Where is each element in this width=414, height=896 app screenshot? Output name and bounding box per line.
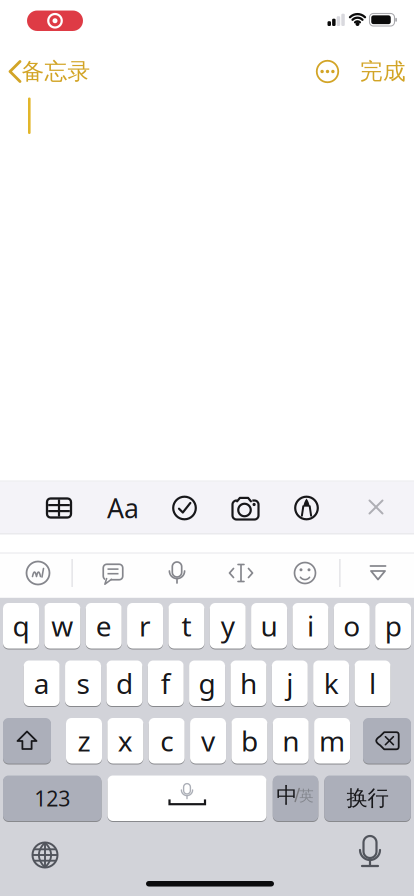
- staticText: x: [118, 722, 133, 759]
- button[interactable]: m: [314, 718, 350, 764]
- staticText: 备忘录: [21, 58, 90, 85]
- button[interactable]: Camera: [223, 486, 267, 530]
- staticText: y: [221, 607, 235, 644]
- button[interactable]: Move cursor: [223, 555, 259, 591]
- button[interactable]: Dictation: [159, 555, 195, 591]
- button[interactable]: d: [106, 660, 142, 707]
- button[interactable]: u: [251, 603, 287, 649]
- staticText: r: [139, 607, 151, 644]
- button[interactable]: v: [190, 718, 226, 764]
- staticText: p: [385, 607, 402, 644]
- staticText: l: [369, 665, 376, 702]
- staticText: t: [181, 607, 191, 644]
- button[interactable]: g: [189, 660, 225, 707]
- button[interactable]: s: [65, 660, 101, 707]
- staticText: a: [34, 665, 50, 702]
- button[interactable]: Dictate: [348, 831, 392, 875]
- button[interactable]: f: [148, 660, 184, 707]
- staticText: 中: [276, 782, 297, 809]
- button[interactable]: w: [44, 603, 80, 649]
- staticText: u: [261, 607, 278, 644]
- staticText: s: [76, 665, 89, 702]
- staticText: b: [241, 722, 258, 759]
- button[interactable]: k: [313, 660, 349, 707]
- button[interactable]: Markup: [284, 486, 328, 530]
- staticText: Aa: [107, 490, 139, 526]
- button[interactable]: 123: [3, 775, 101, 822]
- staticText: z: [77, 722, 90, 759]
- button[interactable]: n: [273, 718, 309, 764]
- staticText: j: [286, 665, 293, 702]
- staticText: 英: [299, 787, 314, 805]
- button[interactable]: i: [292, 603, 328, 649]
- staticText: i: [307, 607, 314, 644]
- button[interactable]: o: [334, 603, 370, 649]
- button[interactable]: Dismiss toolbar: [354, 485, 398, 529]
- button[interactable]: c: [149, 718, 185, 764]
- staticText: e: [96, 607, 112, 644]
- button[interactable]: Checklist: [162, 486, 206, 530]
- button[interactable]: Next keyboard: [23, 833, 67, 877]
- button[interactable]: l: [354, 660, 390, 707]
- staticText: d: [116, 665, 133, 702]
- staticText: q: [12, 607, 29, 644]
- button[interactable]: Input method: [20, 555, 56, 591]
- button[interactable]: Shift: [3, 718, 51, 764]
- button[interactable]: a: [24, 660, 60, 707]
- button[interactable]: h: [230, 660, 266, 707]
- button[interactable]: Insert table: [37, 486, 81, 530]
- staticText: 换行: [347, 785, 389, 811]
- button[interactable]: j: [272, 660, 308, 707]
- staticText: g: [199, 665, 216, 702]
- staticText: c: [160, 722, 173, 759]
- button[interactable]: Stop screen recording: [27, 10, 83, 31]
- staticText: 完成: [360, 58, 406, 85]
- staticText: n: [282, 722, 299, 759]
- staticText: m: [319, 722, 345, 759]
- staticText: v: [201, 722, 215, 759]
- button[interactable]: x: [107, 718, 143, 764]
- button[interactable]: Emoji: [287, 555, 323, 591]
- button[interactable]: z: [66, 718, 102, 764]
- button[interactable]: Messages: [95, 555, 131, 591]
- staticText: k: [324, 665, 339, 702]
- button[interactable]: r: [127, 603, 163, 649]
- staticText: f: [161, 665, 171, 702]
- button[interactable]: q: [3, 603, 39, 649]
- staticText: o: [343, 607, 360, 644]
- button[interactable]: [107, 775, 266, 822]
- button[interactable]: Text format: [101, 486, 145, 530]
- button[interactable]: Hide keyboard: [360, 555, 396, 591]
- button[interactable]: 完成: [358, 53, 408, 89]
- button[interactable]: p: [375, 603, 411, 649]
- button[interactable]: 备忘录: [5, 55, 95, 88]
- button[interactable]: Delete: [363, 718, 411, 764]
- button[interactable]: y: [210, 603, 246, 649]
- button[interactable]: b: [231, 718, 267, 764]
- button[interactable]: e: [86, 603, 122, 649]
- staticText: h: [240, 665, 257, 702]
- button[interactable]: More: [312, 56, 342, 86]
- button[interactable]: [273, 775, 318, 822]
- staticText: w: [51, 607, 73, 644]
- staticText: 123: [34, 784, 70, 812]
- button[interactable]: t: [168, 603, 204, 649]
- button[interactable]: 换行: [324, 775, 411, 822]
